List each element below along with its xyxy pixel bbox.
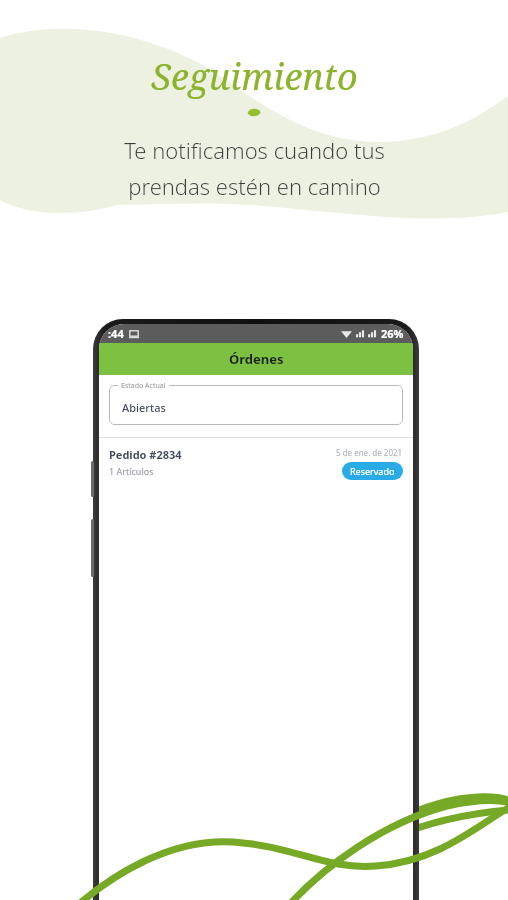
staticText: 5 de ene. de 2021 [336, 447, 403, 458]
staticText: Te notificamos cuando tus [124, 135, 385, 165]
staticText: Reservado [350, 465, 395, 477]
button[interactable]: Pedido #2834 [99, 438, 413, 488]
staticText: Estado Actual [121, 381, 166, 391]
staticText: Órdenes [229, 350, 284, 368]
staticText: Seguimiento [151, 52, 358, 101]
staticText: 26% [381, 326, 404, 341]
button[interactable]: Reservado [342, 462, 403, 480]
staticText: Pedido #2834 [109, 447, 182, 462]
staticText: :44 [108, 326, 124, 341]
staticText: prendas estén en camino [128, 171, 381, 201]
staticText: 1 Artículos [109, 465, 154, 477]
staticText: Abiertas [122, 400, 166, 415]
button[interactable]: Estado Actual [109, 385, 403, 425]
